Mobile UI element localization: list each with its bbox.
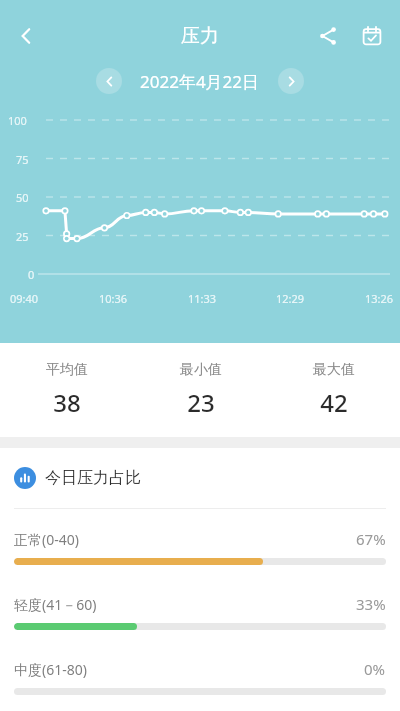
staticText: 33% — [356, 594, 386, 614]
button[interactable]: 正常(0-40) — [0, 529, 400, 565]
staticText: 10:36 — [99, 291, 128, 306]
button[interactable]: 轻度(41－60) — [0, 594, 400, 630]
button[interactable]: Back — [4, 14, 48, 58]
staticText: 2022年4月22日 — [140, 70, 260, 93]
staticText: 今日压力占比 — [45, 468, 141, 488]
staticText: 38 — [53, 386, 81, 419]
button[interactable]: Calendar — [350, 14, 394, 58]
staticText: 25 — [16, 229, 29, 244]
staticText: 11:33 — [188, 291, 217, 306]
button[interactable]: 最小值 — [134, 361, 267, 419]
staticText: 最小值 — [180, 361, 222, 379]
staticText: 75 — [16, 152, 29, 167]
staticText: 中度(61-80) — [14, 660, 87, 679]
button[interactable]: Next day — [278, 68, 304, 94]
staticText: 100 — [8, 113, 27, 128]
staticText: 0 — [28, 267, 35, 282]
button[interactable]: 中度(61-80) — [0, 659, 400, 695]
staticText: 67% — [356, 529, 386, 549]
staticText: 42 — [320, 386, 348, 419]
staticText: 0% — [364, 659, 386, 679]
button[interactable]: 最大值 — [267, 361, 400, 419]
staticText: 13:26 — [365, 291, 394, 306]
staticText: 09:40 — [10, 291, 39, 306]
staticText: 最大值 — [313, 361, 355, 379]
staticText: 12:29 — [276, 291, 305, 306]
staticText: 50 — [16, 190, 29, 205]
button[interactable]: Share — [306, 14, 350, 58]
staticText: 23 — [187, 386, 215, 419]
button[interactable]: 平均值 — [0, 361, 134, 419]
button[interactable]: Previous day — [96, 68, 122, 94]
staticText: 轻度(41－60) — [14, 595, 97, 614]
staticText: 压力 — [181, 24, 219, 48]
staticText: 平均值 — [46, 361, 88, 379]
staticText: 正常(0-40) — [14, 530, 79, 549]
